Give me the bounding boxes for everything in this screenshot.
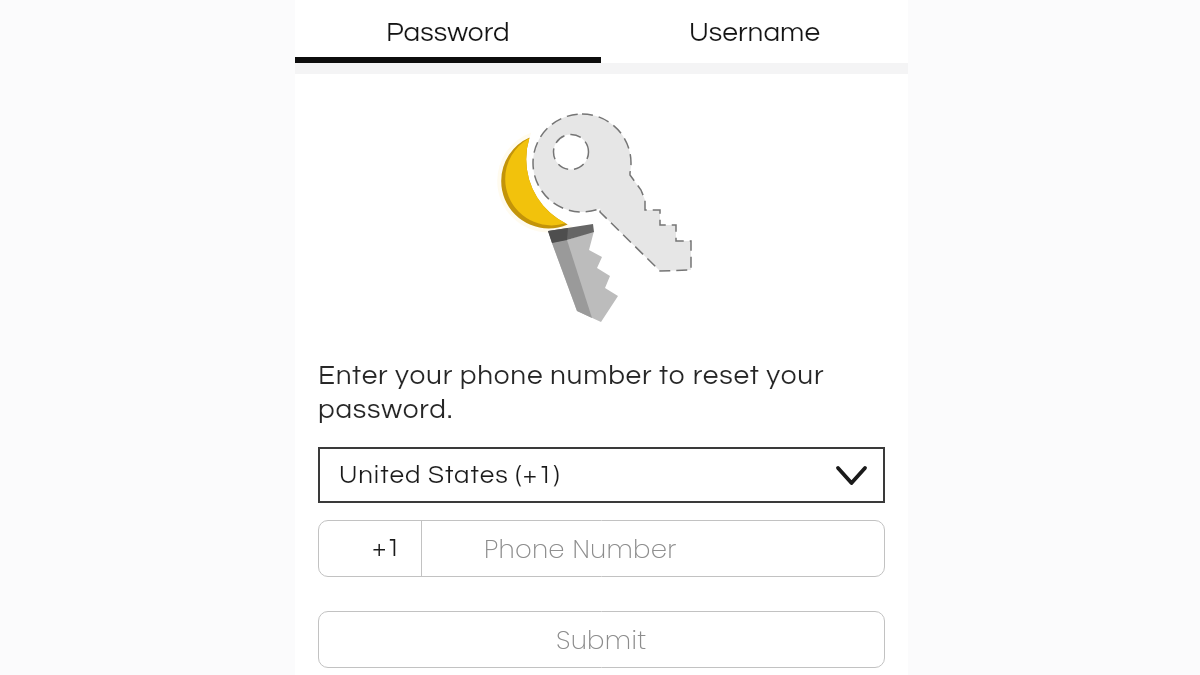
button[interactable]: Username	[601, 0, 908, 63]
staticText: Password	[386, 18, 510, 47]
button[interactable]: United States (+1)	[318, 447, 885, 503]
staticText: Username	[689, 18, 821, 47]
staticText: +1	[372, 535, 401, 562]
button[interactable]: Password	[295, 0, 601, 63]
button[interactable]: +1	[318, 520, 885, 577]
other: Choose country	[838, 468, 865, 483]
staticText: United States (+1)	[339, 462, 561, 489]
staticText: Enter your phone number to reset your pa…	[318, 361, 825, 424]
staticText: Phone Number	[484, 531, 677, 567]
staticText: Submit	[556, 622, 647, 658]
button[interactable]: Submit	[318, 611, 885, 668]
